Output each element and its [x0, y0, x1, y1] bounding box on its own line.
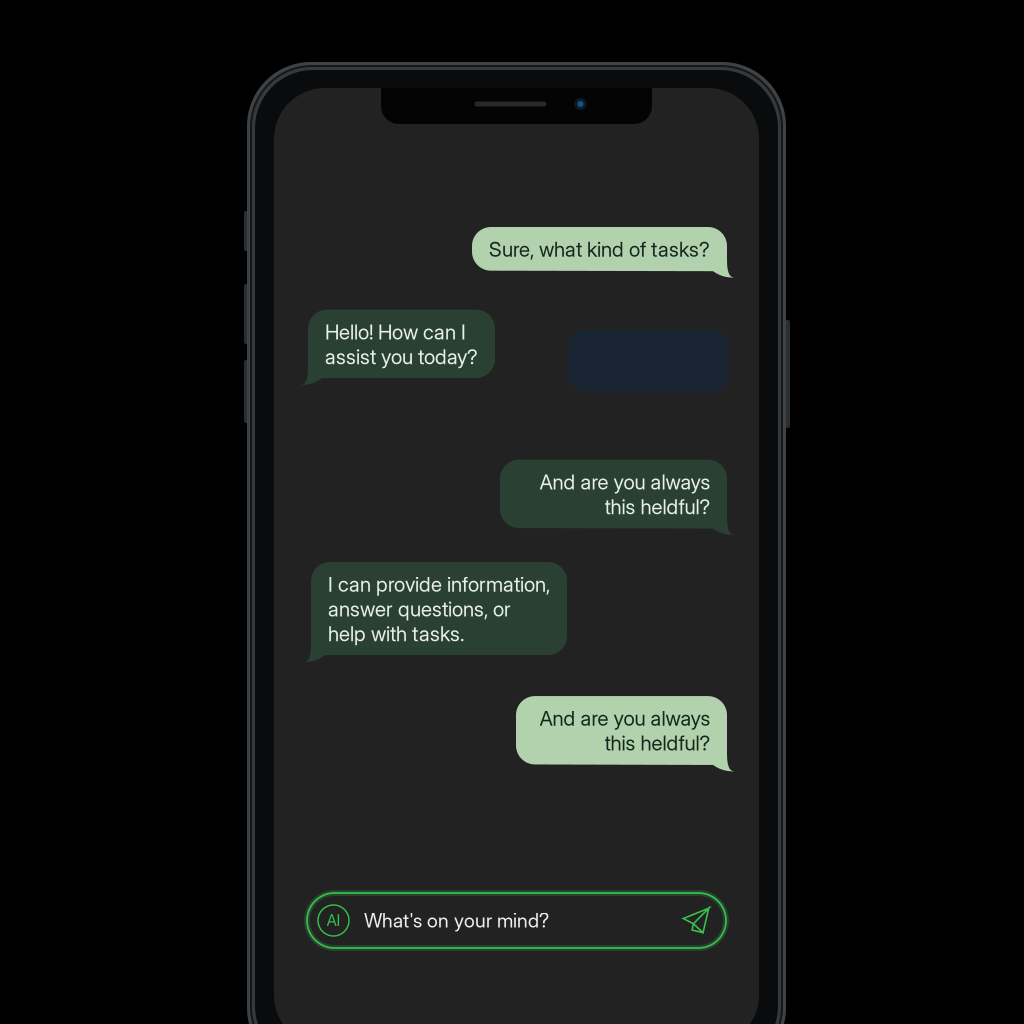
- button[interactable]: And are you always this heldful?: [500, 460, 727, 535]
- staticText: Sure, what kind of tasks?: [489, 237, 710, 262]
- button[interactable]: And are you always this heldful?: [516, 696, 727, 771]
- button[interactable]: AI assistant: [307, 905, 349, 936]
- staticText: Hello! How can I assist you today?: [325, 320, 478, 369]
- staticText: And are you always this heldful?: [539, 706, 710, 755]
- button[interactable]: Hello! How can I assist you today?: [308, 310, 495, 385]
- button[interactable]: Send: [673, 908, 726, 933]
- staticText: And are you always this heldful?: [539, 470, 710, 519]
- button[interactable]: Sure, what kind of tasks?: [472, 227, 727, 278]
- button[interactable]: What's on your mind?: [349, 893, 673, 948]
- staticText: AI: [326, 911, 340, 930]
- button[interactable]: I can provide information, answer questi…: [311, 562, 567, 662]
- staticText: I can provide information, answer questi…: [328, 572, 550, 646]
- staticText: What's on your mind?: [364, 909, 549, 932]
